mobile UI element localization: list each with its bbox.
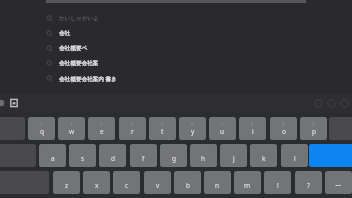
staticText: x <box>95 181 99 190</box>
staticText: p <box>312 127 316 136</box>
button[interactable]: Clipboard <box>9 98 19 108</box>
button[interactable]: l <box>281 144 308 167</box>
staticText: 8 <box>251 121 254 127</box>
button[interactable]: f <box>130 144 157 167</box>
button[interactable]: ? <box>295 171 322 194</box>
button[interactable]: k <box>250 144 277 167</box>
button[interactable]: かいしゃがいよ <box>0 11 352 26</box>
staticText: 5 <box>161 121 164 127</box>
staticText: u <box>220 127 225 136</box>
staticText: 会社概要会社案 <box>59 60 99 67</box>
button[interactable]: Tool 2 <box>326 98 337 109</box>
button[interactable]: Menu <box>0 98 6 108</box>
staticText: a <box>51 154 55 163</box>
button[interactable]: 0 <box>300 117 327 140</box>
button[interactable]: ! <box>264 171 291 194</box>
staticText: k <box>262 154 266 163</box>
button[interactable]: Tool 3 <box>339 98 350 109</box>
staticText: e <box>100 127 104 136</box>
staticText: i <box>252 127 254 136</box>
button[interactable]: 9 <box>270 117 297 140</box>
button[interactable]: m <box>234 171 261 194</box>
staticText: 3 <box>100 121 103 127</box>
button[interactable]: 4 <box>119 117 146 140</box>
staticText: かいしゃがいよ <box>59 15 100 22</box>
staticText: ! <box>277 181 279 190</box>
staticText: ー <box>335 182 342 190</box>
staticText: w <box>69 127 75 136</box>
staticText: 7 <box>221 121 224 127</box>
staticText: f <box>142 154 145 163</box>
button[interactable]: v <box>144 171 171 194</box>
button[interactable]: n <box>204 171 231 194</box>
button[interactable]: 8 <box>239 117 266 140</box>
staticText: z <box>65 181 69 190</box>
staticText: v <box>156 181 160 190</box>
button[interactable]: 会社概要ペ <box>0 41 352 56</box>
button[interactable]: 1 <box>28 117 55 140</box>
staticText: 会社概要ペ <box>59 45 88 52</box>
staticText: d <box>111 154 115 163</box>
staticText: r <box>131 127 134 136</box>
staticText: m <box>244 181 251 190</box>
staticText: 0 <box>312 121 315 127</box>
staticText: 1 <box>40 121 43 127</box>
button[interactable]: 5 <box>149 117 176 140</box>
button[interactable]: b <box>174 171 201 194</box>
button[interactable]: z <box>53 171 80 194</box>
button[interactable]: j <box>220 144 247 167</box>
staticText: n <box>215 181 220 190</box>
button[interactable]: Enter <box>309 144 352 167</box>
button[interactable]: g <box>160 144 187 167</box>
staticText: c <box>125 181 129 190</box>
staticText: b <box>186 181 190 190</box>
staticText: 2 <box>70 121 73 127</box>
button[interactable]: 6 <box>179 117 206 140</box>
button[interactable]: c <box>113 171 140 194</box>
button[interactable]: ー <box>325 171 352 194</box>
button[interactable]: 3 <box>88 117 115 140</box>
staticText: 4 <box>131 121 134 127</box>
button[interactable]: x <box>83 171 110 194</box>
staticText: o <box>282 127 286 136</box>
button[interactable]: Tool 1 <box>313 98 324 109</box>
staticText: j <box>233 154 235 163</box>
staticText: t <box>161 127 164 136</box>
staticText: l <box>294 154 296 163</box>
staticText: y <box>191 127 195 136</box>
button[interactable]: d <box>99 144 126 167</box>
staticText: ? <box>307 181 310 190</box>
staticText: s <box>81 154 85 163</box>
staticText: 6 <box>191 121 194 127</box>
staticText: g <box>172 154 176 163</box>
staticText: 9 <box>282 121 285 127</box>
staticText: 会社概要会社案内 書き <box>59 75 117 83</box>
staticText: q <box>40 127 44 136</box>
button[interactable]: 会社概要会社案内 書き <box>0 71 352 86</box>
button[interactable]: 2 <box>58 117 85 140</box>
staticText: h <box>201 154 206 163</box>
button[interactable]: 会社 <box>0 26 352 41</box>
staticText: 会社 <box>59 30 71 37</box>
button[interactable]: a <box>39 144 66 167</box>
button[interactable]: s <box>69 144 96 167</box>
button[interactable]: 会社概要会社案 <box>0 56 352 71</box>
button[interactable]: h <box>190 144 217 167</box>
button[interactable]: 7 <box>209 117 236 140</box>
